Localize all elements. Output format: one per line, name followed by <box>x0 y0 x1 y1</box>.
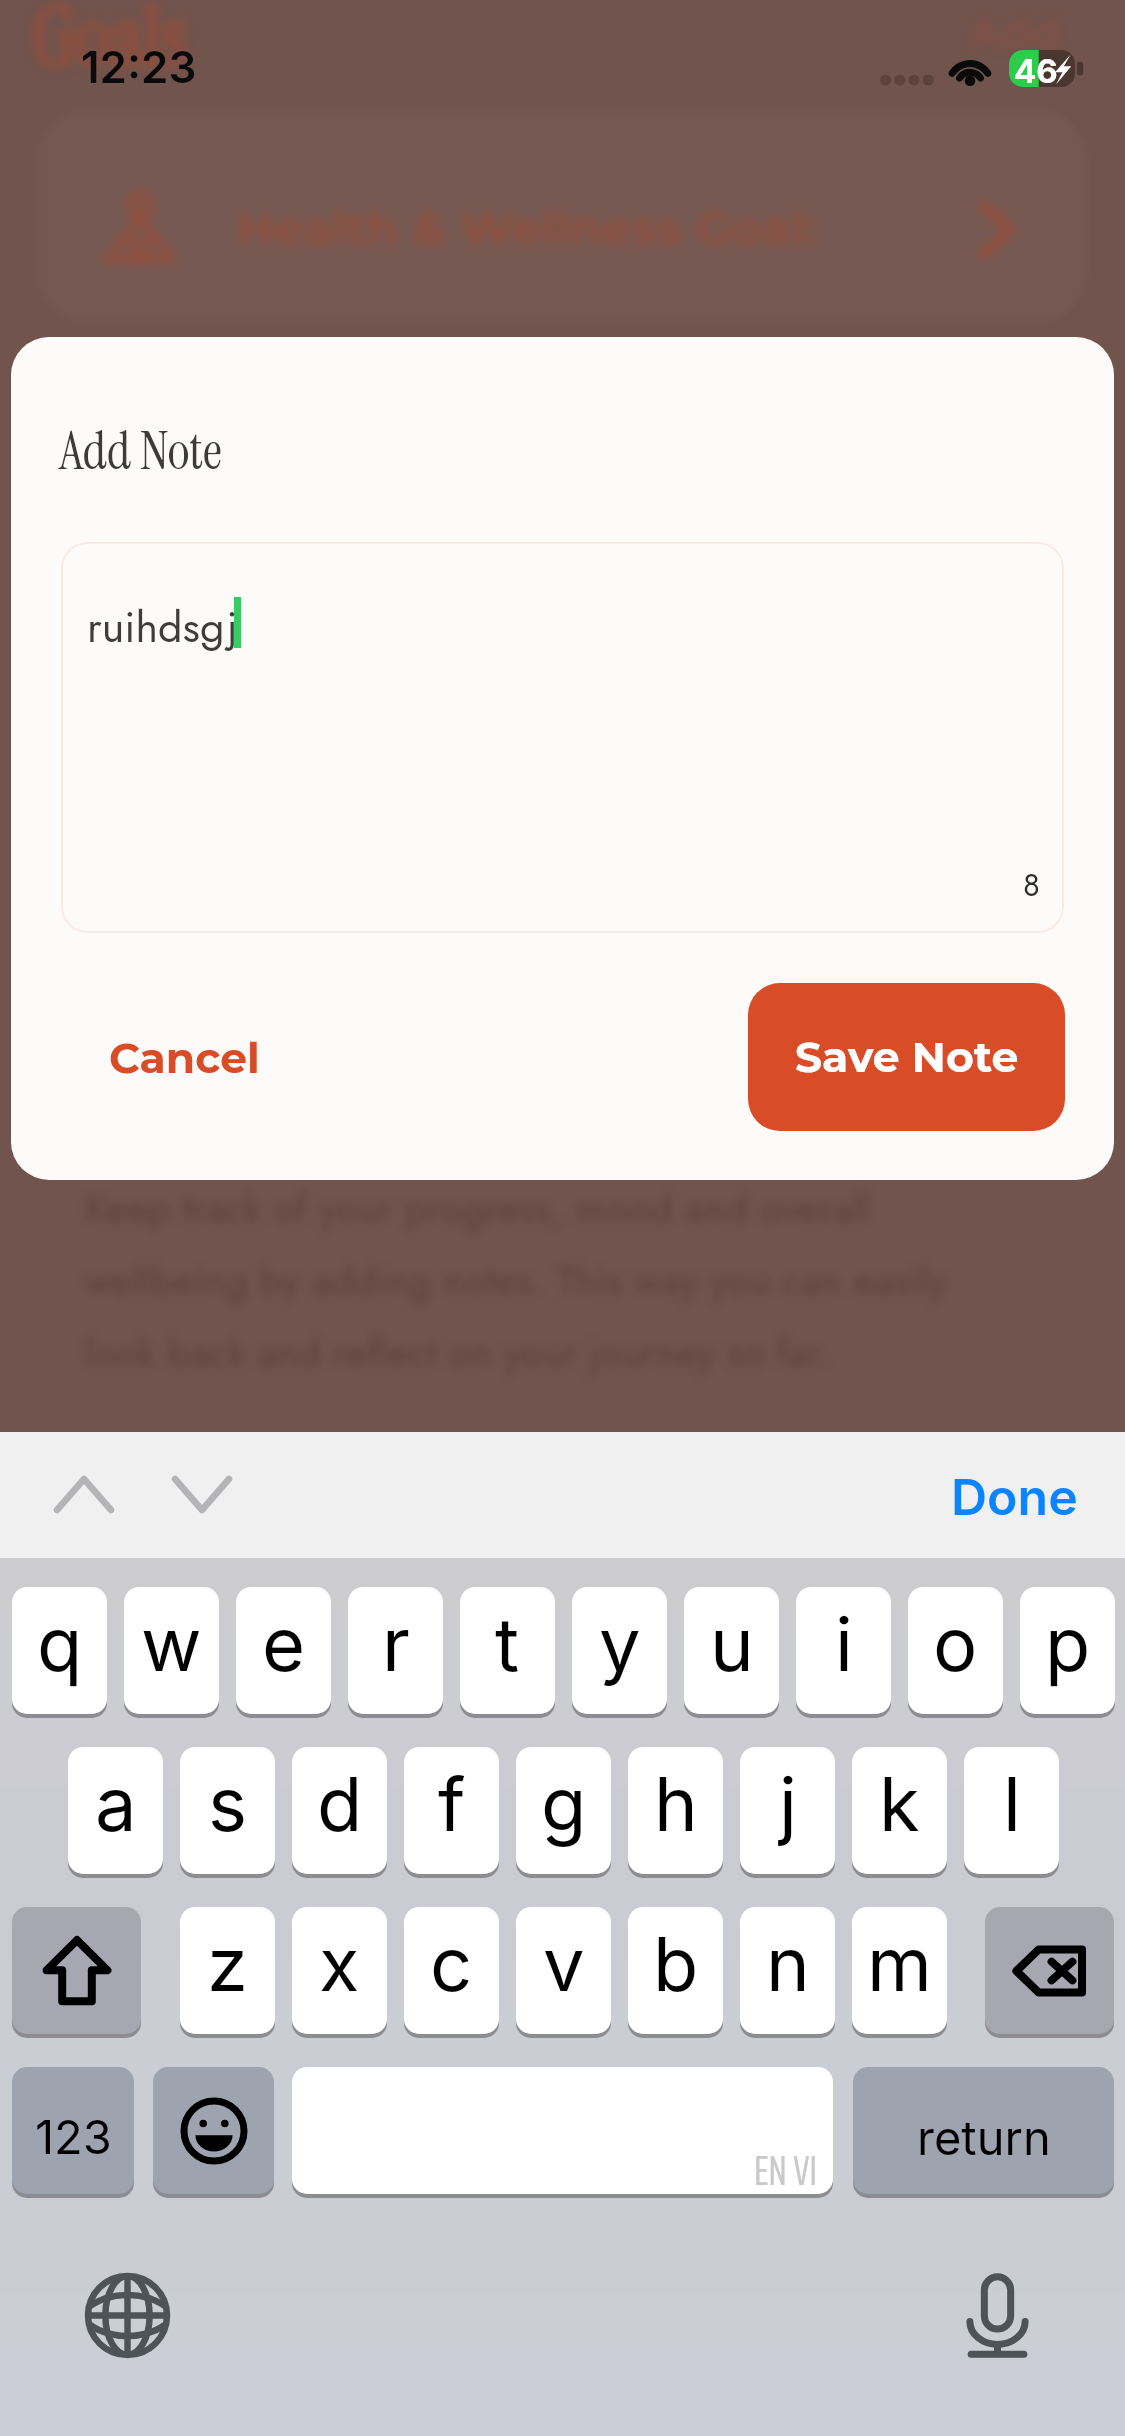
staticText: a <box>95 1759 137 1849</box>
staticText: j <box>779 1759 797 1849</box>
staticText: u <box>710 1599 754 1689</box>
staticText: e <box>262 1599 306 1689</box>
button[interactable]: r <box>348 1587 443 1714</box>
staticText: c <box>430 1919 473 2009</box>
button[interactable]: Emoji <box>153 2067 274 2194</box>
staticText: s <box>208 1759 248 1849</box>
button[interactable]: p <box>1020 1587 1115 1714</box>
staticText: d <box>317 1759 363 1849</box>
button[interactable]: q <box>12 1587 107 1714</box>
staticText: ruihdsgj <box>87 596 238 658</box>
staticText: b <box>653 1919 699 2009</box>
button[interactable]: l <box>964 1747 1059 1874</box>
staticText: n <box>766 1919 810 2009</box>
button[interactable]: o <box>908 1587 1003 1714</box>
button[interactable]: Cancel <box>81 1012 288 1104</box>
button[interactable]: 123 <box>12 2067 134 2194</box>
button[interactable]: v <box>516 1907 611 2034</box>
button[interactable]: z <box>180 1907 275 2034</box>
staticText: x <box>319 1919 360 2009</box>
button[interactable]: Done <box>932 1450 1096 1544</box>
button[interactable]: n <box>740 1907 835 2034</box>
button[interactable]: e <box>236 1587 331 1714</box>
button[interactable]: f <box>404 1747 499 1874</box>
staticText: EN VI <box>754 2137 818 2194</box>
staticText: Cancel <box>109 1032 260 1084</box>
staticText: 123 <box>35 2108 112 2165</box>
staticText: i <box>835 1599 853 1689</box>
staticText: Health & Wellness Goal: <box>236 200 818 257</box>
button[interactable]: s <box>180 1747 275 1874</box>
button[interactable]: h <box>628 1747 723 1874</box>
button[interactable]: g <box>516 1747 611 1874</box>
staticText: Add Note <box>59 417 222 486</box>
staticText: f <box>438 1759 466 1849</box>
button[interactable]: Shift <box>12 1907 141 2034</box>
staticText: r <box>382 1599 410 1689</box>
staticText: Goals <box>30 0 186 93</box>
staticText: Save Note <box>795 1031 1019 1083</box>
button[interactable]: Previous field <box>36 1454 132 1535</box>
button[interactable]: Backspace <box>985 1907 1114 2034</box>
staticText: y <box>599 1599 641 1689</box>
staticText: t <box>495 1599 520 1689</box>
button[interactable]: w <box>124 1587 219 1714</box>
button[interactable]: u <box>684 1587 779 1714</box>
staticText: w <box>141 1599 202 1689</box>
button[interactable]: return <box>853 2067 1114 2194</box>
button[interactable]: Next field <box>154 1454 250 1535</box>
staticText: q <box>37 1599 83 1689</box>
staticText: Add <box>968 6 1062 60</box>
staticText: v <box>543 1919 585 2009</box>
button[interactable]: b <box>628 1907 723 2034</box>
staticText: m <box>867 1919 932 2009</box>
staticText: k <box>879 1759 920 1849</box>
staticText: Done <box>951 1467 1078 1527</box>
button[interactable]: t <box>460 1587 555 1714</box>
button[interactable]: Change keyboard <box>62 2250 192 2380</box>
staticText: 8 <box>1023 863 1040 908</box>
staticText: z <box>207 1919 248 2009</box>
button[interactable]: Space <box>292 2067 833 2194</box>
staticText: 12:23 <box>81 40 197 93</box>
staticText: p <box>1045 1599 1091 1689</box>
button[interactable]: x <box>292 1907 387 2034</box>
staticText: return <box>917 2109 1051 2166</box>
button[interactable]: m <box>852 1907 947 2034</box>
button[interactable]: c <box>404 1907 499 2034</box>
staticText: 46 <box>1014 51 1058 88</box>
button[interactable]: Save Note <box>748 983 1065 1131</box>
button[interactable]: j <box>740 1747 835 1874</box>
staticText: l <box>1003 1759 1021 1849</box>
button[interactable]: Dictate <box>932 2250 1062 2380</box>
staticText: o <box>933 1599 978 1689</box>
staticText: g <box>541 1759 587 1849</box>
staticText: h <box>654 1759 698 1849</box>
button[interactable]: y <box>572 1587 667 1714</box>
button[interactable]: k <box>852 1747 947 1874</box>
button[interactable]: a <box>68 1747 163 1874</box>
button[interactable]: i <box>796 1587 891 1714</box>
button[interactable]: d <box>292 1747 387 1874</box>
